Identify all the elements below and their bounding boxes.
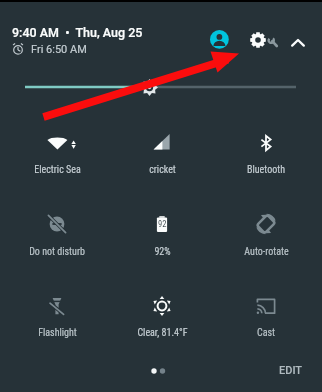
staticText: Flashlight xyxy=(38,327,77,339)
button[interactable]: Brightness xyxy=(20,76,302,98)
staticText: EDIT xyxy=(279,364,303,377)
staticText: Clear, 81.4°F xyxy=(137,327,188,339)
staticText: Auto-rotate xyxy=(244,246,289,258)
button[interactable]: cricket xyxy=(110,117,214,179)
staticText: Fri 6:50 AM xyxy=(31,43,87,56)
button[interactable]: 92 xyxy=(110,198,214,260)
button[interactable]: Bluetooth xyxy=(214,117,318,179)
staticText: 92 xyxy=(158,219,167,229)
button[interactable]: EDIT xyxy=(270,358,312,382)
button[interactable]: Auto-rotate xyxy=(214,198,318,260)
button[interactable]: Do not disturb xyxy=(5,198,109,260)
staticText: Bluetooth xyxy=(247,164,285,176)
button[interactable]: Electric Sea xyxy=(5,117,109,179)
button[interactable]: Settings xyxy=(246,28,282,52)
staticText: Electric Sea xyxy=(34,164,81,176)
staticText: Cast xyxy=(257,327,275,339)
button[interactable]: Flashlight xyxy=(5,280,109,342)
button[interactable]: Clear, 81.4°F xyxy=(110,280,214,342)
button[interactable]: 9:40 AM • Thu, Aug 25 xyxy=(12,25,143,40)
button[interactable]: Collapse panel xyxy=(286,31,310,55)
staticText: 92% xyxy=(154,246,171,258)
staticText: Do not disturb xyxy=(29,246,85,258)
button[interactable]: Page indicator xyxy=(145,362,177,380)
staticText: 9:40 AM • Thu, Aug 25 xyxy=(12,25,143,40)
button[interactable]: Cast xyxy=(214,280,318,342)
button[interactable]: User account xyxy=(207,27,233,53)
staticText: cricket xyxy=(149,164,176,176)
